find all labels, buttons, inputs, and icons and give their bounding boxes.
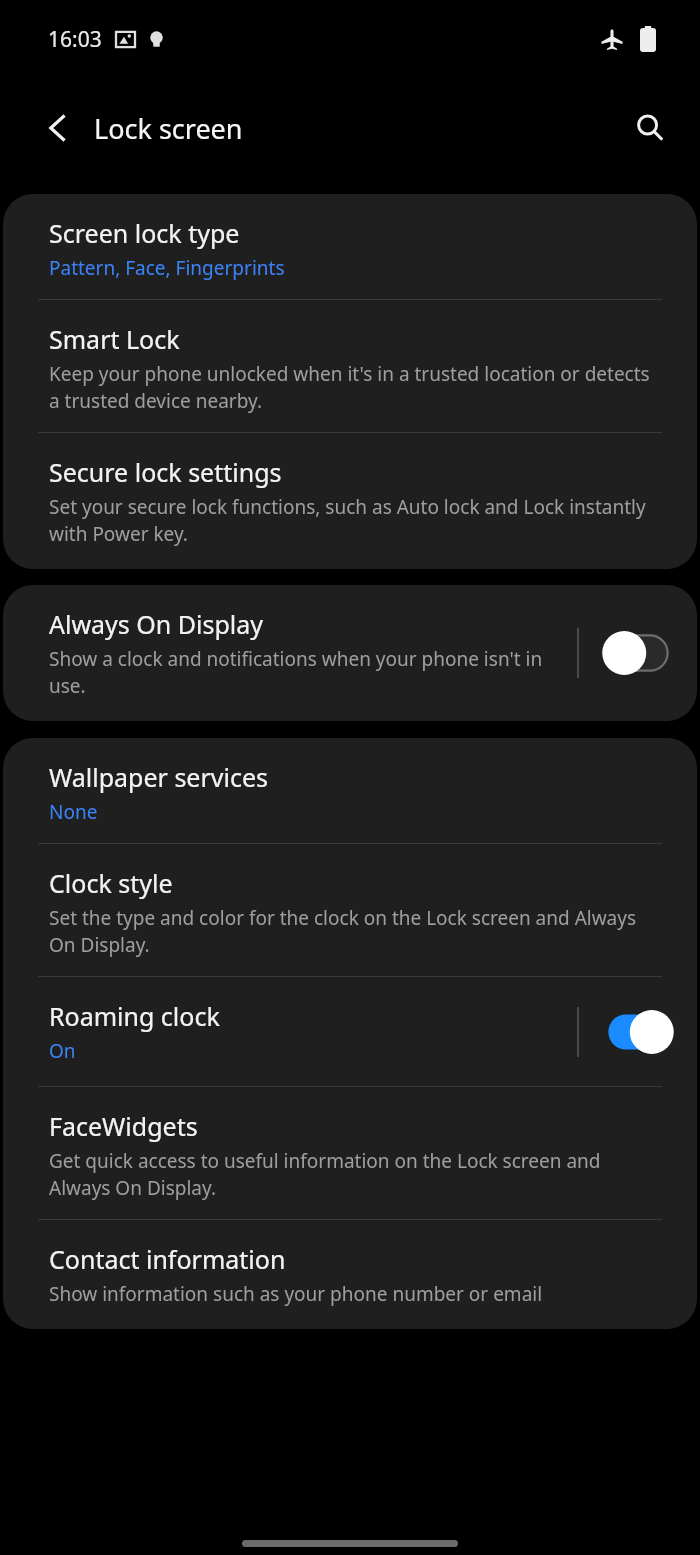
staticText: On (49, 1038, 76, 1064)
button[interactable]: Toggle on (601, 1010, 675, 1054)
button[interactable]: Wallpaper services (3, 738, 697, 843)
staticText: Contact information (49, 1242, 286, 1276)
staticText: Set the type and color for the clock on … (49, 905, 657, 958)
button[interactable]: Back (30, 100, 86, 156)
staticText: Lock screen (94, 110, 243, 147)
staticText: Roaming clock (49, 999, 220, 1033)
button[interactable]: Roaming clock (3, 977, 697, 1086)
staticText: Set your secure lock functions, such as … (49, 494, 657, 547)
staticText: Pattern, Face, Fingerprints (49, 255, 285, 281)
button[interactable]: Toggle off (601, 631, 675, 675)
button[interactable]: Secure lock settings (3, 433, 697, 569)
button[interactable]: Screen lock type (3, 194, 697, 299)
button[interactable]: FaceWidgets (3, 1087, 697, 1219)
staticText: Wallpaper services (49, 760, 269, 794)
staticText: Clock style (49, 866, 173, 900)
button[interactable]: Always On Display (3, 585, 697, 721)
staticText: Show information such as your phone numb… (49, 1281, 543, 1307)
button[interactable]: Smart Lock (3, 300, 697, 432)
staticText: Screen lock type (49, 216, 240, 250)
staticText: Keep your phone unlocked when it's in a … (49, 361, 657, 414)
button[interactable]: Clock style (3, 844, 697, 976)
staticText: Always On Display (49, 607, 264, 641)
staticText: Secure lock settings (49, 455, 282, 489)
staticText: FaceWidgets (49, 1109, 198, 1143)
button[interactable]: Contact information (3, 1220, 697, 1329)
staticText: None (49, 799, 98, 825)
staticText: 16:03 (48, 25, 102, 54)
staticText: Show a clock and notifications when your… (49, 646, 565, 699)
staticText: Smart Lock (49, 322, 180, 356)
staticText: Get quick access to useful information o… (49, 1148, 657, 1201)
button[interactable]: Search (622, 100, 678, 156)
